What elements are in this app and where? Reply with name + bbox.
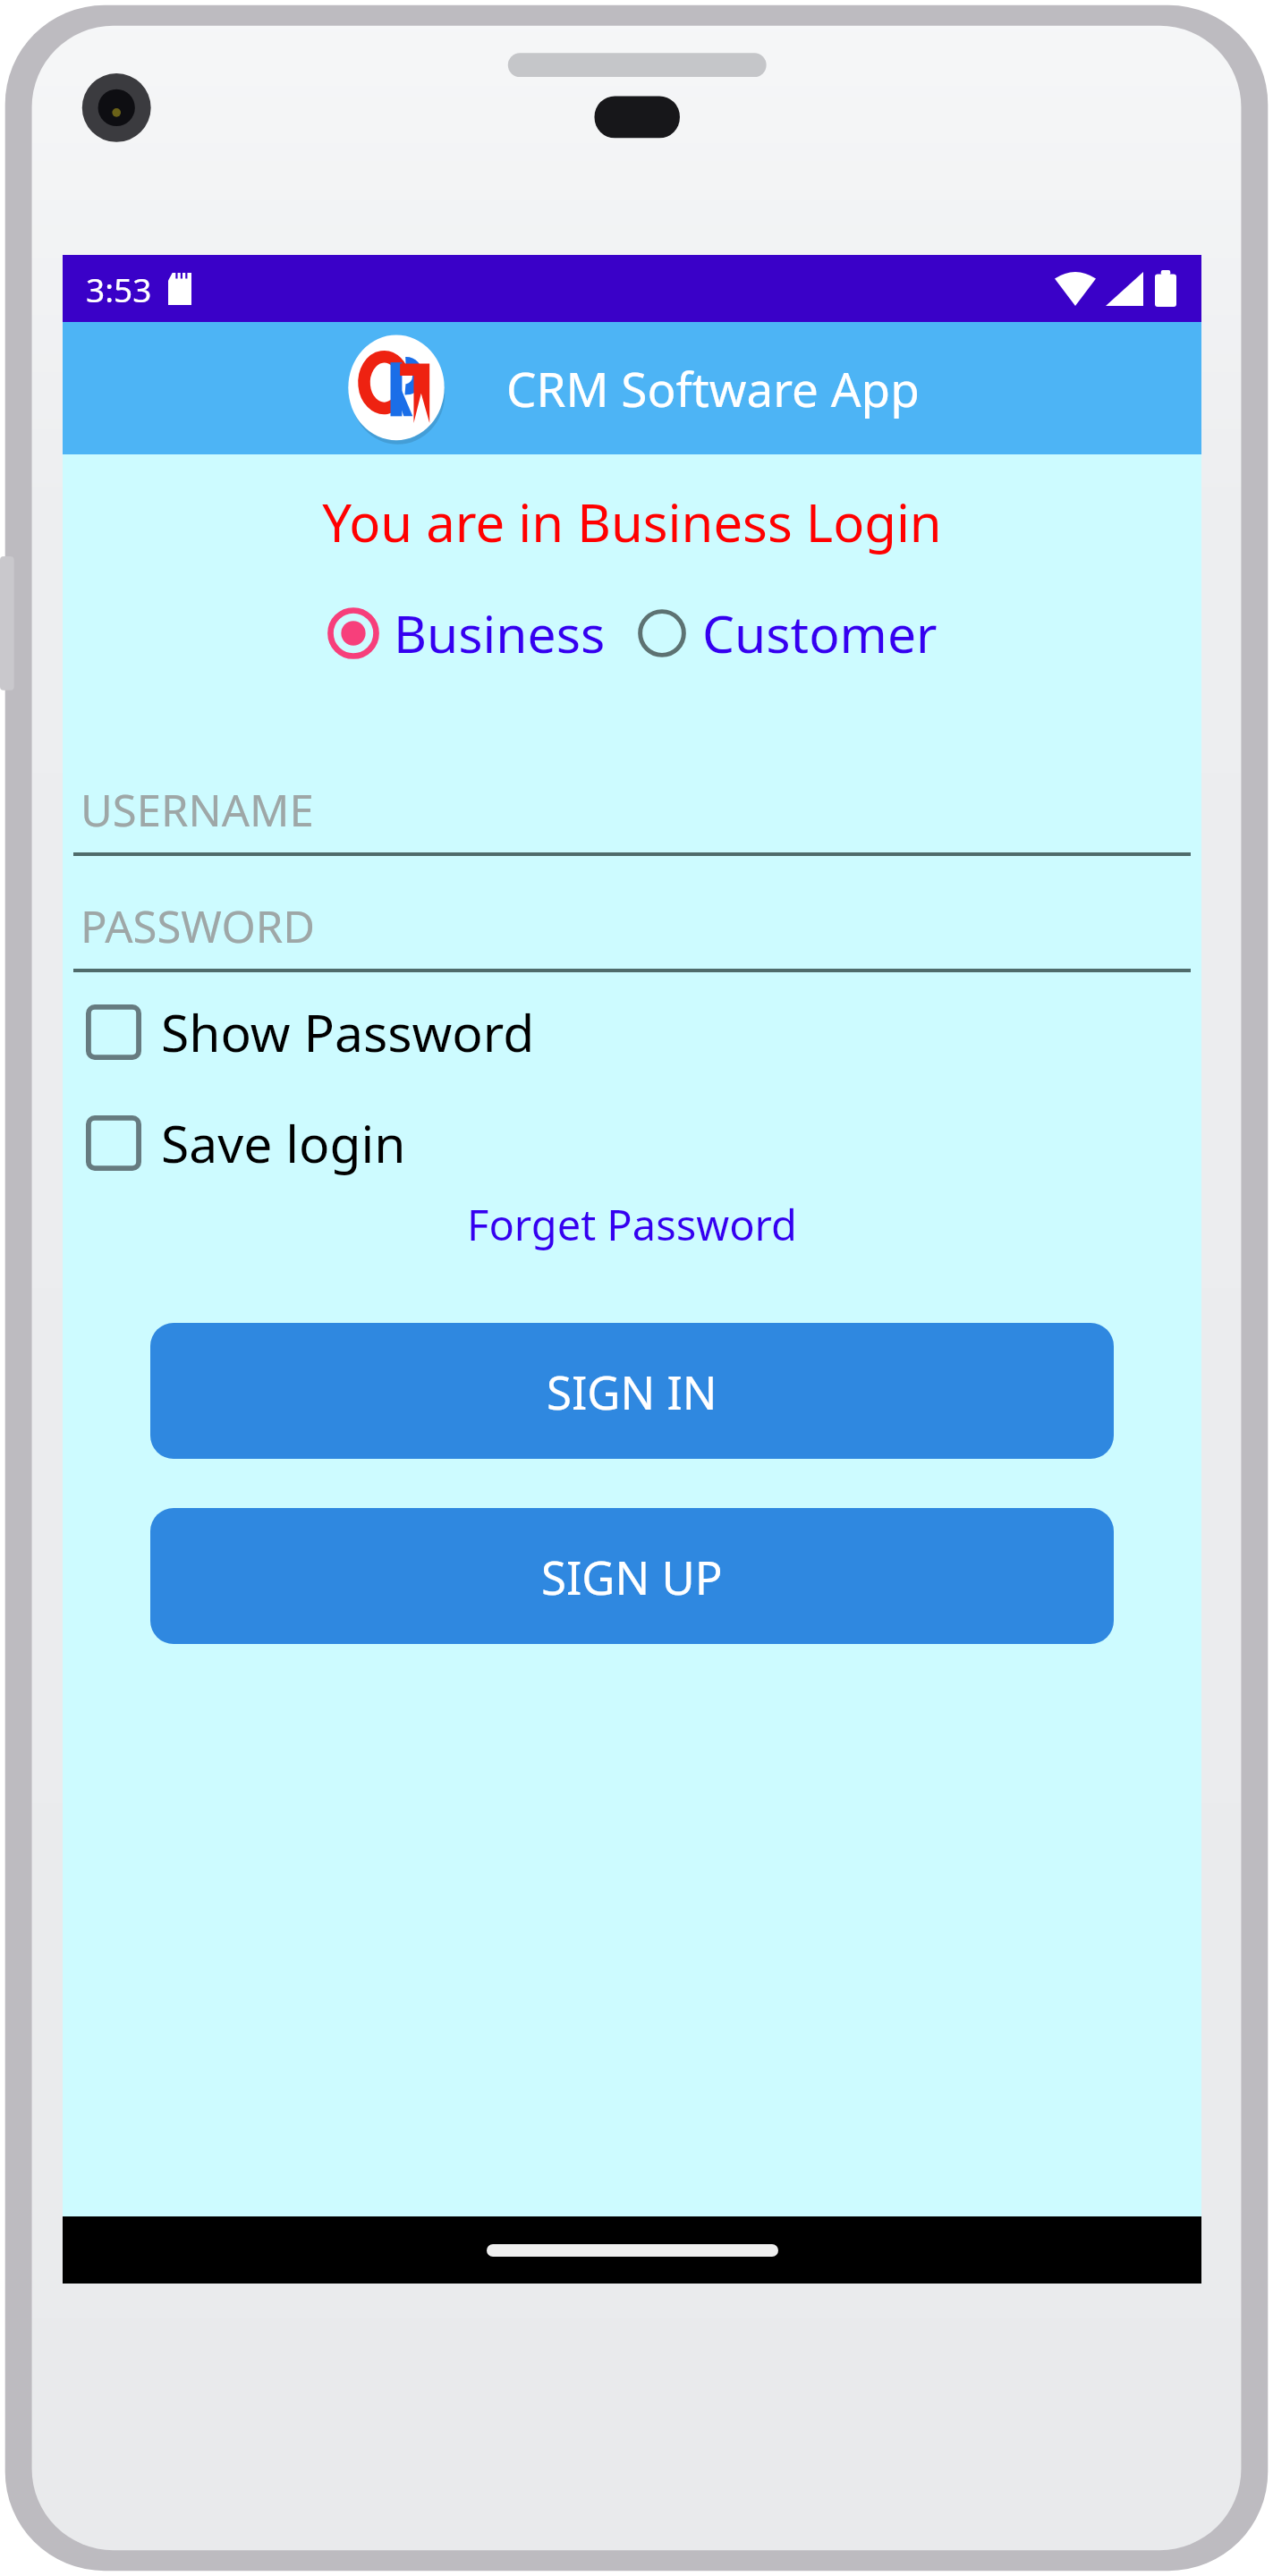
- button[interactable]: Forget Password: [63, 1196, 1201, 1253]
- button[interactable]: Show Password: [79, 997, 1201, 1067]
- button[interactable]: PASSWORD: [73, 883, 1191, 972]
- staticText: 3:53: [86, 267, 152, 311]
- staticText: Save login: [161, 1108, 406, 1178]
- staticText: CRM Software App: [506, 356, 920, 420]
- staticText: USERNAME: [81, 780, 314, 840]
- staticText: SIGN IN: [547, 1360, 717, 1422]
- staticText: Customer: [702, 598, 938, 668]
- button[interactable]: Save login: [79, 1108, 1201, 1178]
- button[interactable]: SIGN IN: [150, 1323, 1114, 1459]
- other: CRM app logo: [344, 331, 449, 445]
- staticText: Show Password: [161, 997, 535, 1067]
- button[interactable]: Customer: [636, 598, 938, 668]
- staticText: Forget Password: [467, 1196, 797, 1253]
- button[interactable]: USERNAME: [73, 767, 1191, 856]
- staticText: PASSWORD: [81, 896, 315, 956]
- button[interactable]: Business: [327, 598, 606, 668]
- button[interactable]: SIGN UP: [150, 1508, 1114, 1644]
- staticText: You are in Business Login: [63, 487, 1201, 557]
- staticText: SIGN UP: [541, 1546, 723, 1607]
- staticText: Business: [394, 598, 606, 668]
